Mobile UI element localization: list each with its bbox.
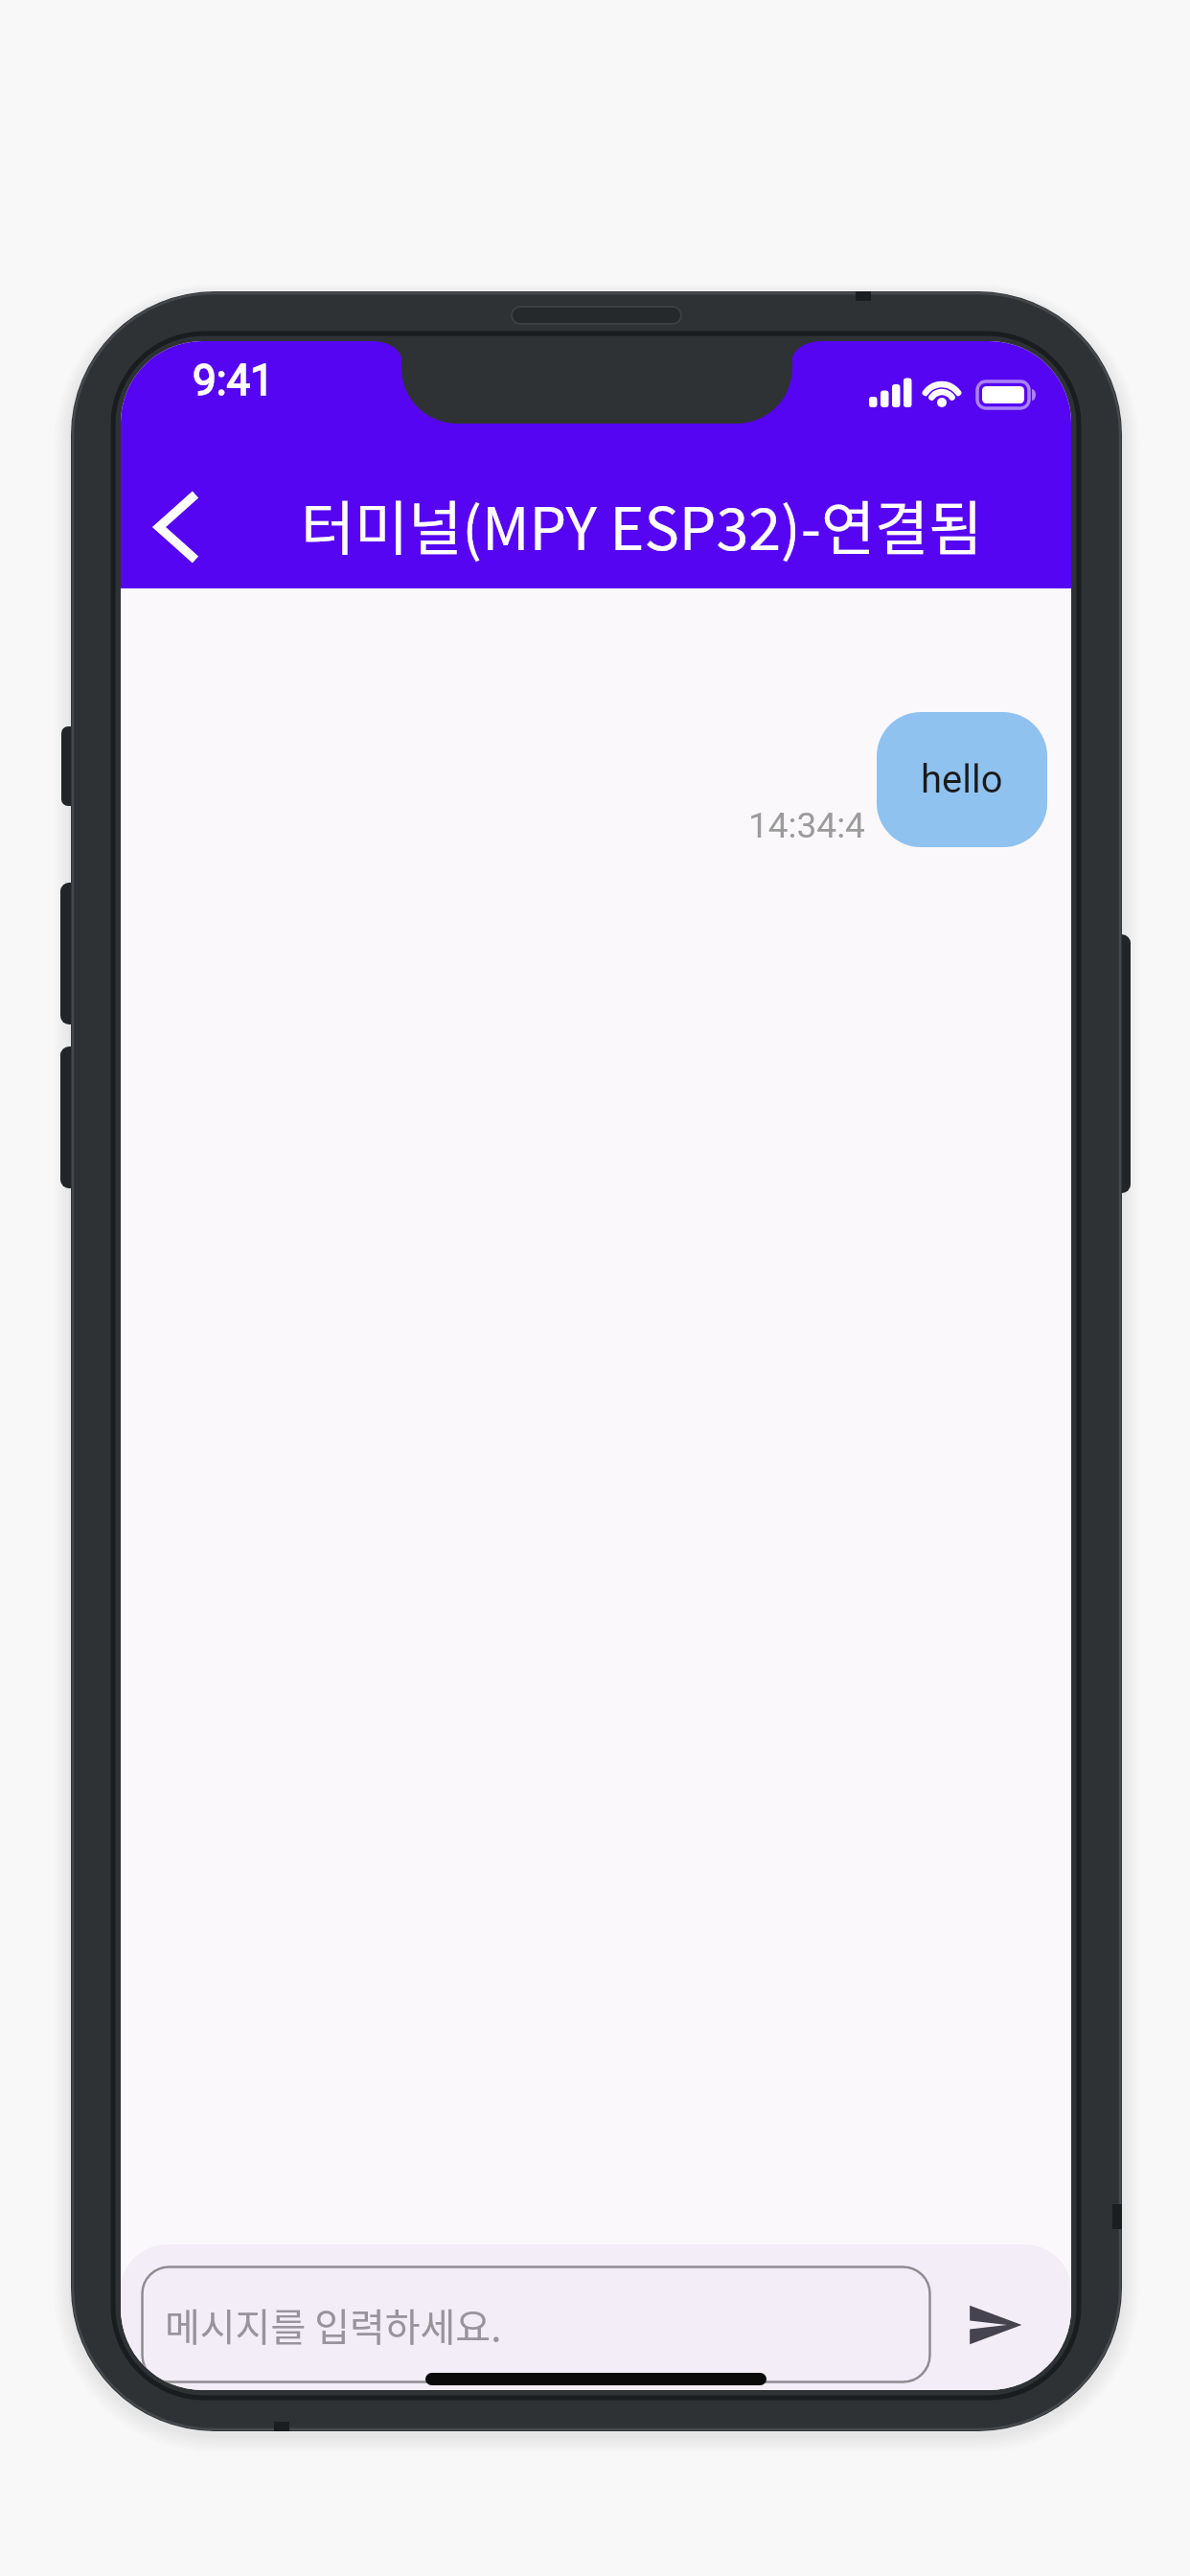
button[interactable]: hello <box>877 712 1047 847</box>
staticText: 14:34:4 <box>748 805 865 846</box>
staticText: hello <box>921 757 1003 802</box>
button[interactable] <box>130 466 245 588</box>
button[interactable] <box>941 2277 1048 2373</box>
staticText: 터미널(MPY ESP32)-연결됨 <box>301 482 983 566</box>
staticText: 9:41 <box>193 356 274 405</box>
button[interactable]: 메시지를 입력하세요. <box>141 2265 931 2383</box>
staticText: 메시지를 입력하세요. <box>165 2297 502 2353</box>
